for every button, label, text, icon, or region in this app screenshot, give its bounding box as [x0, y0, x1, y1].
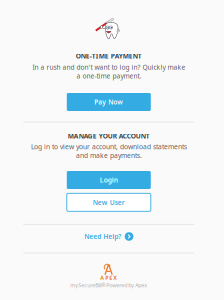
staticText: MANAGE YOUR ACCOUNT [68, 132, 150, 140]
staticText: ONE-TIME PAYMENT [76, 52, 142, 60]
button[interactable]: Need Help? [84, 232, 133, 241]
staticText: In a rush and don't want to log in? Quic… [32, 63, 185, 80]
staticText: Pay Now [94, 98, 123, 106]
staticText: Need Help? [84, 232, 121, 241]
staticText: APEX [100, 274, 117, 281]
staticText: Log in to view your account, download st… [31, 142, 187, 160]
button[interactable]: Login [67, 171, 151, 189]
staticText: Login [100, 176, 118, 184]
staticText: New User [93, 198, 125, 207]
button[interactable]: New User [67, 193, 151, 211]
staticText: mySecureBill® Powered by Apex [70, 282, 147, 289]
button[interactable]: Pay Now [67, 93, 151, 111]
